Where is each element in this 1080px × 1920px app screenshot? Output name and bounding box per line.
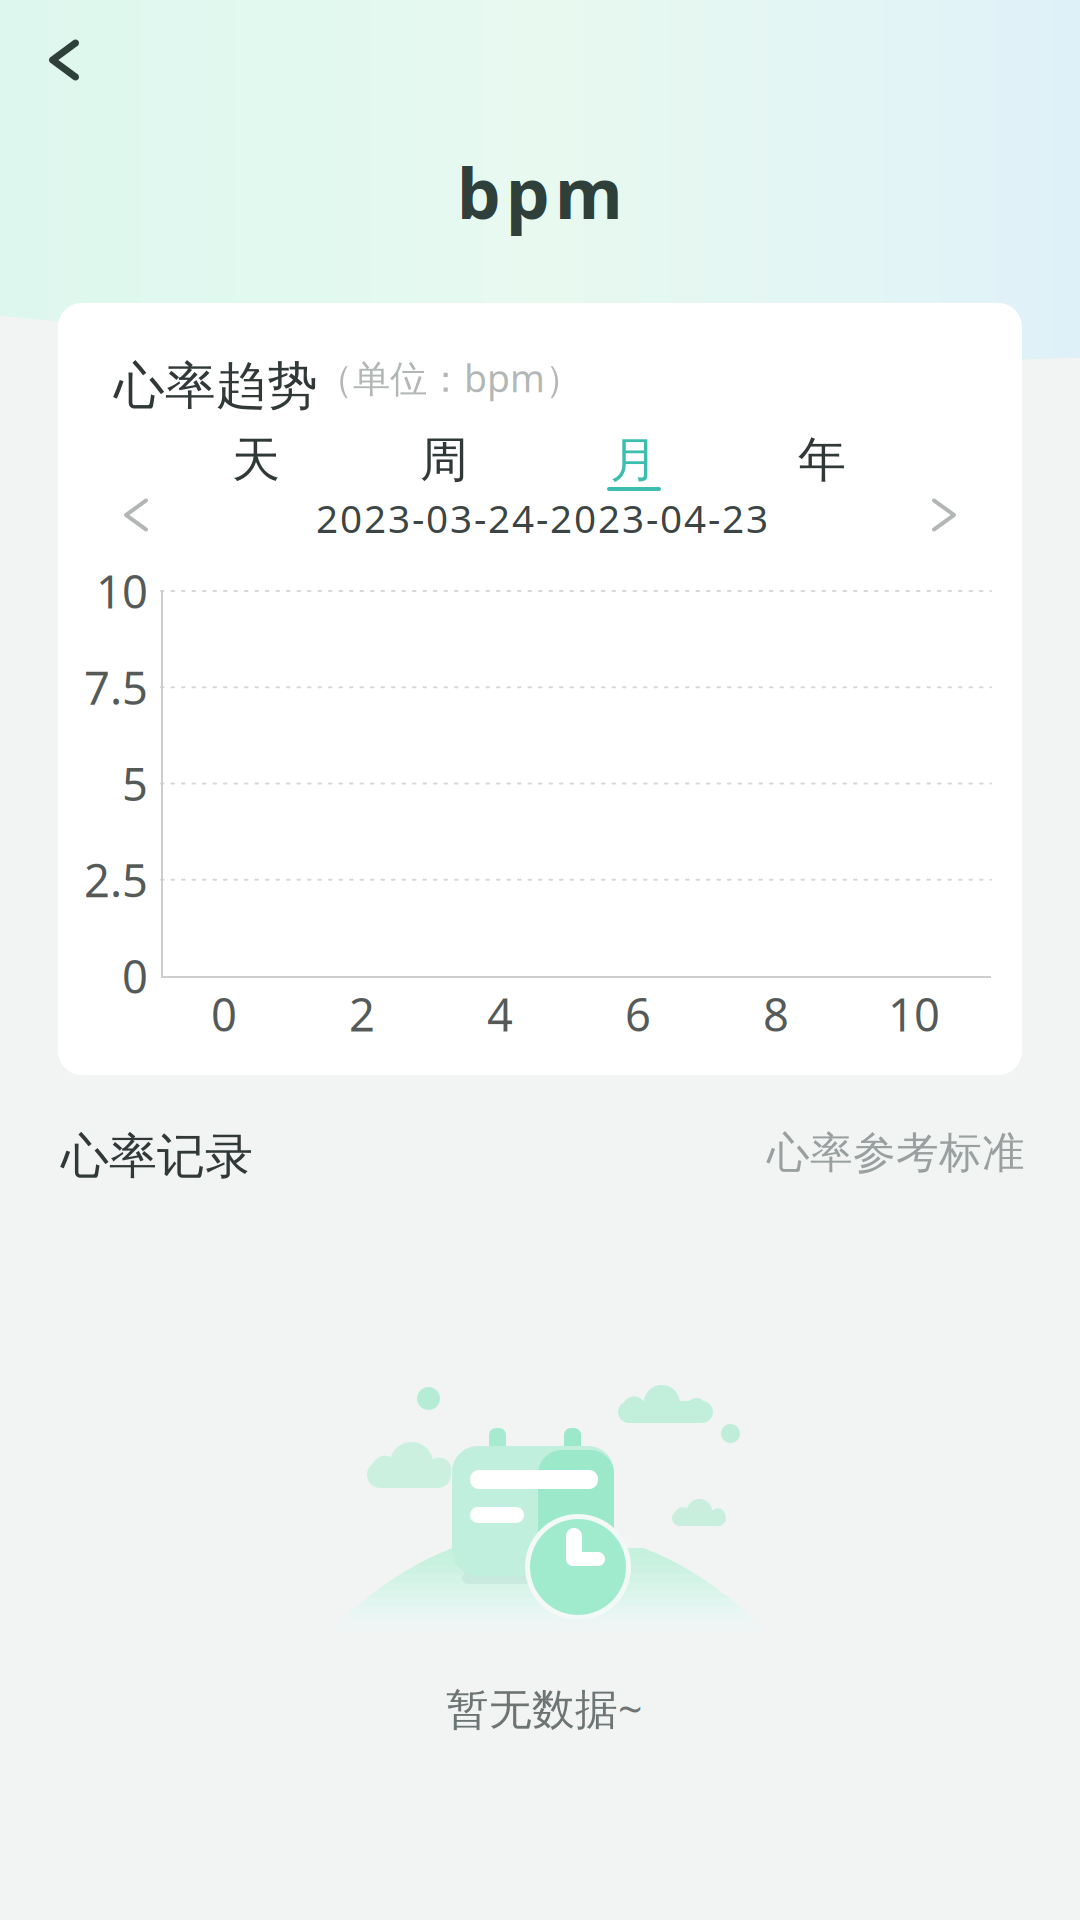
staticText: 天 xyxy=(232,430,280,489)
staticText: 5 xyxy=(122,753,148,814)
staticText: 10 xyxy=(888,984,940,1044)
button[interactable]: 周 xyxy=(383,434,505,506)
staticText: 4 xyxy=(487,984,513,1044)
staticText: 2.5 xyxy=(84,850,148,910)
staticText: 7.5 xyxy=(84,657,148,717)
staticText: bpm xyxy=(457,146,623,238)
staticText: 心率趋势 xyxy=(114,355,318,417)
staticText: 暂无数据~ xyxy=(446,1680,642,1736)
button[interactable]: 年 xyxy=(761,434,883,506)
staticText: （单位：bpm） xyxy=(316,353,582,403)
staticText: 周 xyxy=(420,430,468,489)
button[interactable]: 月 xyxy=(573,434,695,506)
button[interactable]: Previous period xyxy=(100,479,172,551)
staticText: 心率参考标准 xyxy=(767,1127,1025,1179)
staticText: 心率记录 xyxy=(61,1127,253,1186)
staticText: 0 xyxy=(122,946,148,1006)
staticText: 8 xyxy=(763,984,789,1044)
button[interactable]: 天 xyxy=(195,434,317,506)
staticText: 0 xyxy=(211,984,237,1044)
staticText: 月 xyxy=(610,430,658,489)
staticText: 2 xyxy=(349,984,375,1044)
staticText: 2023-03-24-2023-04-23 xyxy=(316,492,768,544)
staticText: 10 xyxy=(96,561,148,621)
button[interactable]: Next period xyxy=(908,479,980,551)
staticText: 6 xyxy=(625,984,651,1044)
button[interactable]: Back xyxy=(18,14,110,106)
staticText: 年 xyxy=(798,430,846,489)
button[interactable]: 心率参考标准 xyxy=(705,1128,1025,1178)
